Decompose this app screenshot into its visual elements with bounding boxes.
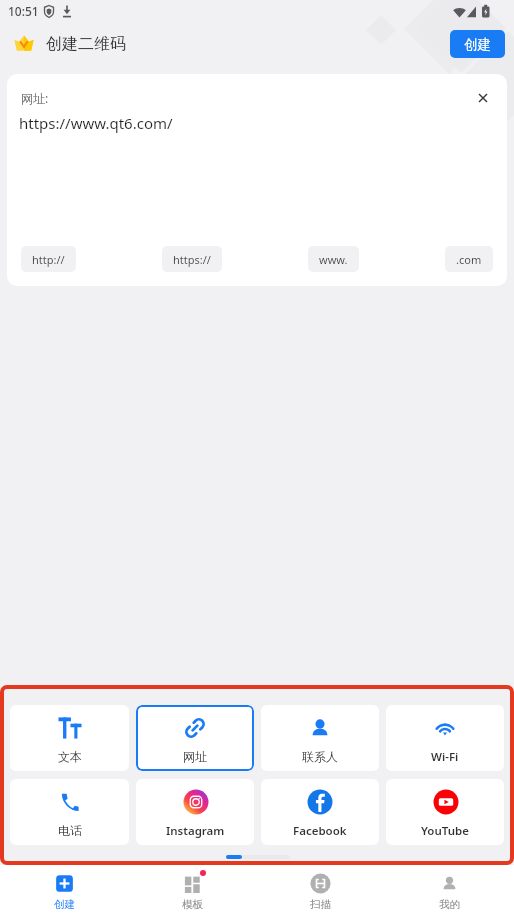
button[interactable]: 创建	[450, 30, 505, 58]
button[interactable]: 文本	[10, 705, 129, 771]
staticText: 10:51	[8, 3, 39, 19]
button[interactable]: 网址	[136, 705, 254, 771]
button[interactable]: 电话	[10, 779, 129, 845]
staticText: Wi-Fi	[431, 749, 459, 765]
button[interactable]: http://	[21, 246, 76, 272]
staticText: .com	[456, 252, 482, 267]
staticText: 创建	[464, 36, 491, 53]
staticText: 我的	[439, 898, 460, 911]
staticText: 联系人	[302, 749, 338, 764]
staticText: Facebook	[293, 823, 347, 839]
button[interactable]: www.	[308, 246, 359, 272]
button[interactable]: 扫描	[256, 865, 385, 914]
staticText: 电话	[58, 823, 82, 838]
button[interactable]: 我的	[385, 865, 514, 914]
staticText: 模板	[182, 898, 203, 911]
staticText: https://www.qt6.com/	[19, 113, 173, 133]
button[interactable]: Close	[468, 83, 498, 113]
button[interactable]: 模板	[128, 865, 256, 914]
button[interactable]: Wi-Fi	[386, 705, 504, 771]
staticText: 网址	[183, 749, 207, 764]
button[interactable]: 创建	[0, 865, 128, 914]
button[interactable]: .com	[445, 246, 493, 272]
button[interactable]: https://	[162, 246, 222, 272]
button[interactable]: Instagram	[136, 779, 254, 845]
staticText: https://	[173, 252, 211, 267]
button[interactable]: Facebook	[261, 779, 379, 845]
staticText: 文本	[58, 749, 82, 764]
staticText: 网址:	[21, 90, 49, 106]
staticText: http://	[32, 252, 65, 267]
button[interactable]: YouTube	[386, 779, 504, 845]
staticText: 扫描	[310, 898, 331, 911]
staticText: 创建二维码	[46, 34, 126, 54]
staticText: Instagram	[166, 823, 225, 839]
staticText: www.	[319, 252, 348, 267]
staticText: YouTube	[421, 823, 470, 839]
staticText: 创建	[54, 898, 75, 911]
button[interactable]: 联系人	[261, 705, 379, 771]
